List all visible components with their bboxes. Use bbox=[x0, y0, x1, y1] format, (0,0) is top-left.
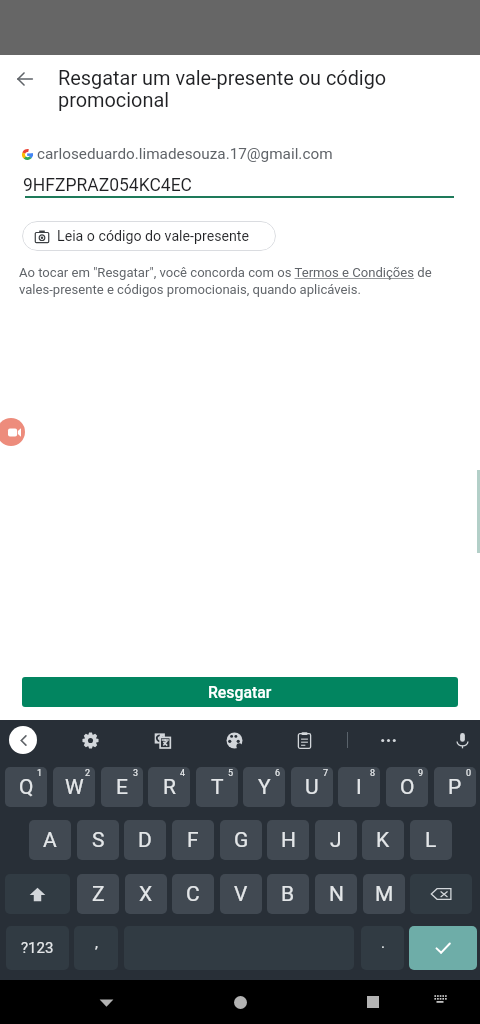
staticText: S bbox=[92, 828, 105, 853]
staticText: Q bbox=[19, 775, 34, 800]
staticText: U bbox=[305, 775, 319, 800]
button[interactable]: Recolher barra de ferramentas bbox=[9, 726, 37, 754]
staticText: 2 bbox=[85, 768, 91, 779]
staticText: 9 bbox=[418, 768, 424, 779]
button[interactable]: Recentes bbox=[353, 982, 393, 1022]
staticText: Z bbox=[92, 882, 105, 907]
button[interactable]: R bbox=[148, 767, 190, 807]
button[interactable]: Z bbox=[77, 874, 119, 914]
button[interactable]: J bbox=[315, 820, 357, 860]
staticText: X bbox=[139, 882, 153, 907]
button[interactable]: Área de transferência bbox=[290, 726, 318, 754]
staticText: D bbox=[138, 828, 152, 853]
button[interactable]: O bbox=[386, 767, 428, 807]
staticText: 5 bbox=[228, 768, 234, 779]
button[interactable]: Voltar bbox=[7, 61, 43, 97]
staticText: G bbox=[234, 828, 249, 853]
button[interactable]: W bbox=[53, 767, 95, 807]
staticText: A bbox=[43, 828, 57, 853]
button[interactable]: I bbox=[338, 767, 380, 807]
staticText: R bbox=[163, 775, 176, 800]
button[interactable]: A bbox=[29, 820, 71, 860]
staticText: . bbox=[381, 934, 385, 952]
button[interactable]: Shift bbox=[5, 874, 70, 914]
staticText: 9HFZPRAZ054KC4EC bbox=[23, 175, 192, 196]
staticText: V bbox=[234, 882, 248, 907]
staticText: E bbox=[116, 775, 128, 800]
button[interactable]: V bbox=[220, 874, 262, 914]
button[interactable]: G bbox=[220, 820, 262, 860]
button[interactable]: Q bbox=[5, 767, 47, 807]
staticText: 0 bbox=[466, 768, 472, 779]
staticText: 7 bbox=[323, 768, 329, 779]
button[interactable]: Fechar teclado bbox=[86, 982, 126, 1022]
button[interactable]: Resgatar bbox=[22, 677, 458, 707]
button[interactable]: B bbox=[267, 874, 309, 914]
button[interactable]: X bbox=[125, 874, 167, 914]
button[interactable]: L bbox=[410, 820, 452, 860]
button[interactable]: U bbox=[291, 767, 333, 807]
button[interactable]: Gravação de tela bbox=[0, 418, 25, 446]
button[interactable]: S bbox=[77, 820, 119, 860]
button[interactable]: Voz bbox=[448, 726, 476, 754]
button[interactable]: D bbox=[124, 820, 166, 860]
staticText: L bbox=[425, 828, 437, 853]
staticText: carloseduardo.limadesouza.17@gmail.com bbox=[37, 145, 333, 163]
staticText: K bbox=[376, 828, 390, 853]
button[interactable]: Mudar teclado bbox=[424, 982, 456, 1014]
button[interactable]: E bbox=[101, 767, 143, 807]
button[interactable]: M bbox=[363, 874, 405, 914]
staticText: Y bbox=[258, 775, 271, 800]
staticText: W bbox=[65, 775, 84, 800]
button[interactable]: N bbox=[315, 874, 357, 914]
staticText: C bbox=[186, 882, 200, 907]
staticText: N bbox=[329, 882, 344, 907]
staticText: T bbox=[211, 775, 224, 800]
button[interactable]: C bbox=[172, 874, 214, 914]
button[interactable]: Configurações bbox=[76, 726, 104, 754]
button[interactable]: K bbox=[362, 820, 404, 860]
staticText: Ao tocar em "Resgatar", você concorda co… bbox=[19, 265, 443, 297]
staticText: O bbox=[400, 775, 415, 800]
button[interactable]: Traduzir bbox=[148, 726, 176, 754]
staticText: I bbox=[356, 775, 362, 800]
button[interactable]: P bbox=[434, 767, 476, 807]
button[interactable]: . bbox=[361, 926, 404, 970]
staticText: 3 bbox=[133, 768, 139, 779]
button[interactable]: Enter bbox=[409, 926, 477, 970]
staticText: Resgatar bbox=[208, 683, 272, 702]
staticText: J bbox=[330, 828, 342, 853]
button[interactable]: , bbox=[74, 926, 118, 970]
staticText: Resgatar um vale-presente ou código prom… bbox=[58, 67, 398, 112]
button[interactable]: T bbox=[196, 767, 238, 807]
button[interactable]: H bbox=[267, 820, 309, 860]
button[interactable]: Mais opções bbox=[374, 726, 402, 754]
button[interactable]: ?123 bbox=[6, 926, 69, 970]
staticText: F bbox=[187, 828, 199, 853]
staticText: 8 bbox=[370, 768, 376, 779]
staticText: 6 bbox=[275, 768, 281, 779]
staticText: 1 bbox=[37, 768, 43, 779]
button[interactable]: Apagar bbox=[410, 874, 472, 914]
staticText: M bbox=[375, 882, 394, 907]
staticText: P bbox=[448, 775, 462, 800]
button[interactable]: Temas bbox=[220, 726, 248, 754]
button[interactable]: F bbox=[172, 820, 214, 860]
button[interactable]: Y bbox=[243, 767, 285, 807]
staticText: Leia o código do vale-presente bbox=[57, 228, 250, 245]
button[interactable]: Leia o código do vale-presente bbox=[22, 221, 276, 251]
staticText: 4 bbox=[180, 768, 186, 779]
staticText: B bbox=[281, 882, 295, 907]
staticText: H bbox=[281, 828, 296, 853]
staticText: ?123 bbox=[21, 939, 54, 957]
staticText: , bbox=[95, 934, 98, 952]
button[interactable]: Início bbox=[220, 982, 260, 1022]
